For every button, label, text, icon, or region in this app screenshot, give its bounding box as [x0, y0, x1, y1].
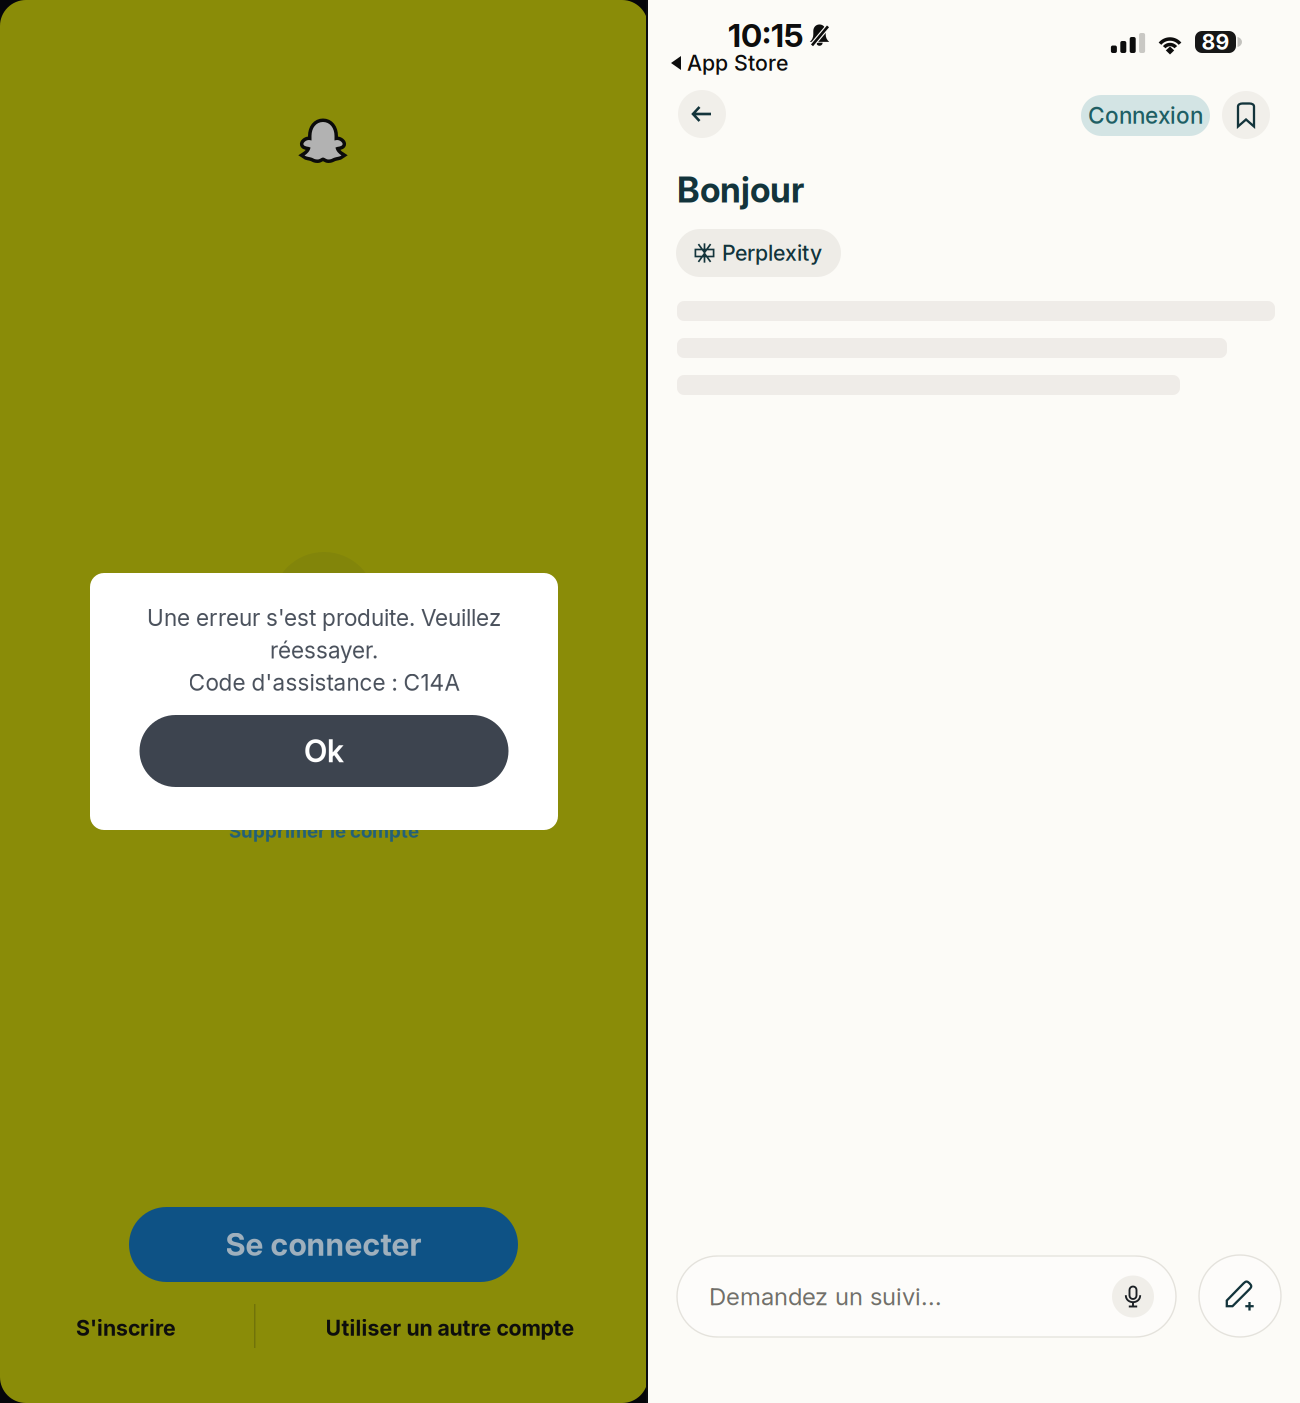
staticText: Ok — [304, 732, 344, 769]
staticText: Supprimer le compte — [229, 820, 419, 842]
staticText: Utiliser un autre compte — [325, 1315, 574, 1341]
staticText: Se connecter — [225, 1226, 421, 1263]
button[interactable]: Ok — [139, 715, 508, 787]
staticText: Perplexity — [722, 240, 822, 266]
button[interactable]: Se connecter — [129, 1207, 518, 1282]
staticText: Une erreur s'est produite. Veuillez — [147, 604, 501, 631]
staticText: 89 — [1201, 29, 1229, 55]
button[interactable]: Utiliser un autre compte — [290, 1306, 610, 1350]
button[interactable]: New thread — [1199, 1255, 1281, 1337]
staticText: App Store — [687, 50, 788, 76]
staticText: Connexion — [1088, 102, 1203, 129]
button[interactable]: S'inscrire — [46, 1306, 206, 1350]
staticText: réessayer. — [270, 636, 378, 664]
staticText: S'inscrire — [76, 1315, 176, 1341]
button[interactable]: Demandez un suivi... — [677, 1256, 1176, 1337]
staticText: Bonjour — [677, 169, 804, 211]
button[interactable]: Save — [1222, 91, 1270, 139]
staticText: Code d'assistance : C14A — [188, 669, 459, 696]
button[interactable]: Back — [678, 90, 726, 138]
staticText: 10:15 — [728, 16, 804, 55]
staticText: Demandez un suivi... — [709, 1282, 942, 1311]
button[interactable]: App Store — [671, 51, 788, 75]
button[interactable]: Supprimer le compte — [90, 815, 558, 847]
button[interactable]: Connexion — [1081, 95, 1210, 136]
